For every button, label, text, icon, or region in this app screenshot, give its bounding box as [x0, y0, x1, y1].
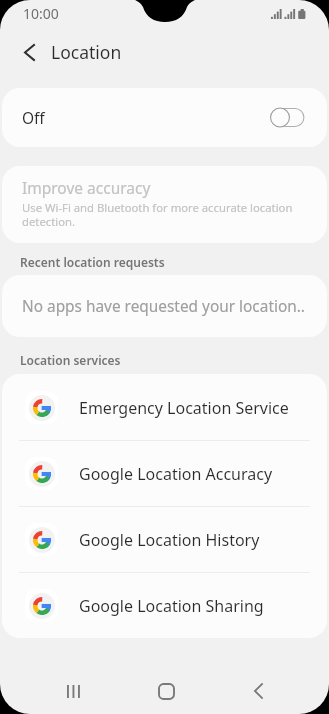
- button[interactable]: Home: [138, 670, 194, 712]
- staticText: Improve accuracy: [22, 177, 151, 198]
- button[interactable]: Emergency Location Service: [2, 374, 327, 440]
- staticText: Emergency Location Service: [79, 397, 289, 419]
- staticText: Use Wi-Fi and Bluetooth for more accurat…: [22, 200, 300, 229]
- button[interactable]: Recent apps: [46, 670, 102, 712]
- staticText: Off: [22, 107, 45, 128]
- staticText: No apps have requested your location..: [22, 296, 305, 317]
- staticText: Google Location Sharing: [79, 595, 264, 617]
- staticText: 10:00: [23, 4, 59, 23]
- staticText: Location services: [20, 352, 121, 368]
- staticText: Google Location Accuracy: [79, 463, 273, 485]
- staticText: Google Location History: [79, 529, 260, 551]
- button[interactable]: Navigate up: [14, 30, 44, 74]
- button[interactable]: Google Location Sharing: [2, 572, 327, 638]
- button[interactable]: Google Location Accuracy: [2, 440, 327, 506]
- button[interactable]: Google Location History: [2, 506, 327, 572]
- staticText: Recent location requests: [20, 254, 165, 270]
- staticText: Location: [51, 40, 122, 64]
- button[interactable]: Back: [230, 670, 286, 712]
